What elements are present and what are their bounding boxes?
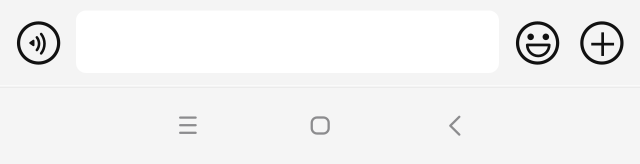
button[interactable]: Recent apps: [160, 97, 216, 153]
button[interactable]: Back: [427, 98, 483, 154]
button[interactable]: Emoji: [510, 13, 566, 73]
button[interactable]: Add attachment: [574, 13, 630, 73]
button[interactable]: Home: [292, 97, 348, 153]
button[interactable]: Voice message: [11, 13, 67, 73]
